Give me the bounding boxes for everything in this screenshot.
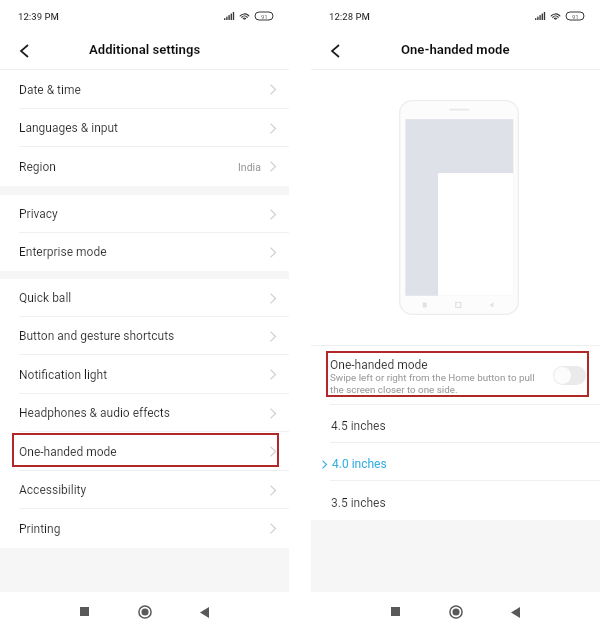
staticText: Swipe left or right from the Home button… [330, 372, 535, 396]
staticText: Languages & input [19, 121, 119, 135]
button[interactable]: Printing [0, 509, 289, 548]
button[interactable]: Recent apps [375, 593, 415, 629]
button[interactable]: Toggle one-handed mode [553, 366, 586, 385]
button[interactable]: Region [0, 147, 289, 186]
button[interactable]: Privacy [0, 195, 289, 233]
staticText: Privacy [19, 207, 58, 221]
button[interactable]: Navigate up [319, 35, 351, 67]
button[interactable]: Home [436, 593, 476, 629]
staticText: Region [19, 160, 56, 174]
button[interactable]: Recent apps [64, 593, 104, 629]
staticText: Quick ball [19, 291, 72, 305]
staticText: Accessibility [19, 483, 87, 497]
staticText: Button and gesture shortcuts [19, 329, 175, 343]
button[interactable]: Date & time [0, 70, 289, 109]
staticText: 12:28 PM [329, 11, 370, 22]
button[interactable]: Enterprise mode [0, 233, 289, 271]
staticText: One-handed mode [19, 445, 117, 459]
staticText: One-handed mode [401, 42, 510, 57]
button[interactable]: One-handed mode [0, 432, 289, 471]
button[interactable]: Back [184, 594, 224, 629]
staticText: 3.5 inches [331, 496, 386, 510]
staticText: 4.0 inches [332, 457, 387, 471]
staticText: 91 [261, 13, 268, 20]
staticText: Date & time [19, 83, 81, 97]
staticText: 91 [572, 13, 579, 20]
staticText: Enterprise mode [19, 245, 107, 259]
button[interactable]: 4.0 inches [311, 443, 600, 481]
button[interactable]: Back [495, 594, 535, 629]
button[interactable]: Quick ball [0, 279, 289, 317]
button[interactable]: Languages & input [0, 109, 289, 147]
button[interactable]: 3.5 inches [311, 481, 600, 520]
button[interactable]: Button and gesture shortcuts [0, 317, 289, 355]
button[interactable]: Notification light [0, 355, 289, 394]
button[interactable]: 4.5 inches [311, 405, 600, 443]
button[interactable]: Accessibility [0, 471, 289, 509]
staticText: Notification light [19, 368, 108, 382]
staticText: Additional settings [89, 42, 201, 57]
staticText: Headphones & audio effects [19, 406, 170, 420]
staticText: India [238, 161, 261, 173]
staticText: 12:39 PM [18, 11, 59, 22]
button[interactable]: Headphones & audio effects [0, 394, 289, 432]
staticText: 4.5 inches [331, 419, 386, 433]
button[interactable]: One-handed mode [311, 346, 600, 405]
staticText: Printing [19, 522, 61, 536]
button[interactable]: Home [125, 593, 165, 629]
button[interactable]: Navigate up [8, 35, 40, 67]
staticText: One-handed mode [330, 358, 428, 372]
